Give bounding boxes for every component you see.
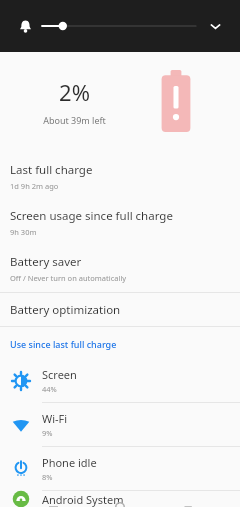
staticText: 44% xyxy=(42,384,57,394)
staticText: Screen xyxy=(42,367,77,382)
staticText: Phone idle xyxy=(42,455,97,470)
staticText: 9% xyxy=(42,428,53,438)
staticText: Android System xyxy=(42,492,124,507)
button[interactable]: Wi-Fi xyxy=(0,403,240,447)
button[interactable]: Notifications xyxy=(14,15,36,37)
staticText: Screen usage since full charge xyxy=(10,208,173,224)
staticText: 2% xyxy=(59,77,90,107)
button[interactable]: Battery saver xyxy=(0,246,240,292)
button[interactable]: Brightness slider xyxy=(42,15,196,37)
staticText: Battery saver xyxy=(10,254,82,270)
button[interactable]: Screen xyxy=(0,359,240,403)
button[interactable]: Last full charge xyxy=(0,154,240,200)
staticText: Last full charge xyxy=(10,162,93,178)
staticText: 9h 30m xyxy=(10,227,37,237)
button[interactable]: Expand xyxy=(204,15,226,37)
staticText: About 39m left xyxy=(43,114,106,126)
button[interactable]: Phone idle xyxy=(0,447,240,491)
staticText: 8% xyxy=(42,472,53,482)
other: Low battery xyxy=(158,70,194,132)
button[interactable]: Android System xyxy=(0,491,240,507)
staticText: Use since last full charge xyxy=(10,338,117,350)
button[interactable]: Screen usage since full charge xyxy=(0,200,240,246)
staticText: Wi-Fi xyxy=(42,411,68,426)
button[interactable]: Battery optimization xyxy=(0,293,240,326)
staticText: Battery optimization xyxy=(10,302,121,318)
staticText: Off / Never turn on automatically xyxy=(10,273,127,283)
staticText: 1d 9h 2m ago xyxy=(10,181,59,191)
